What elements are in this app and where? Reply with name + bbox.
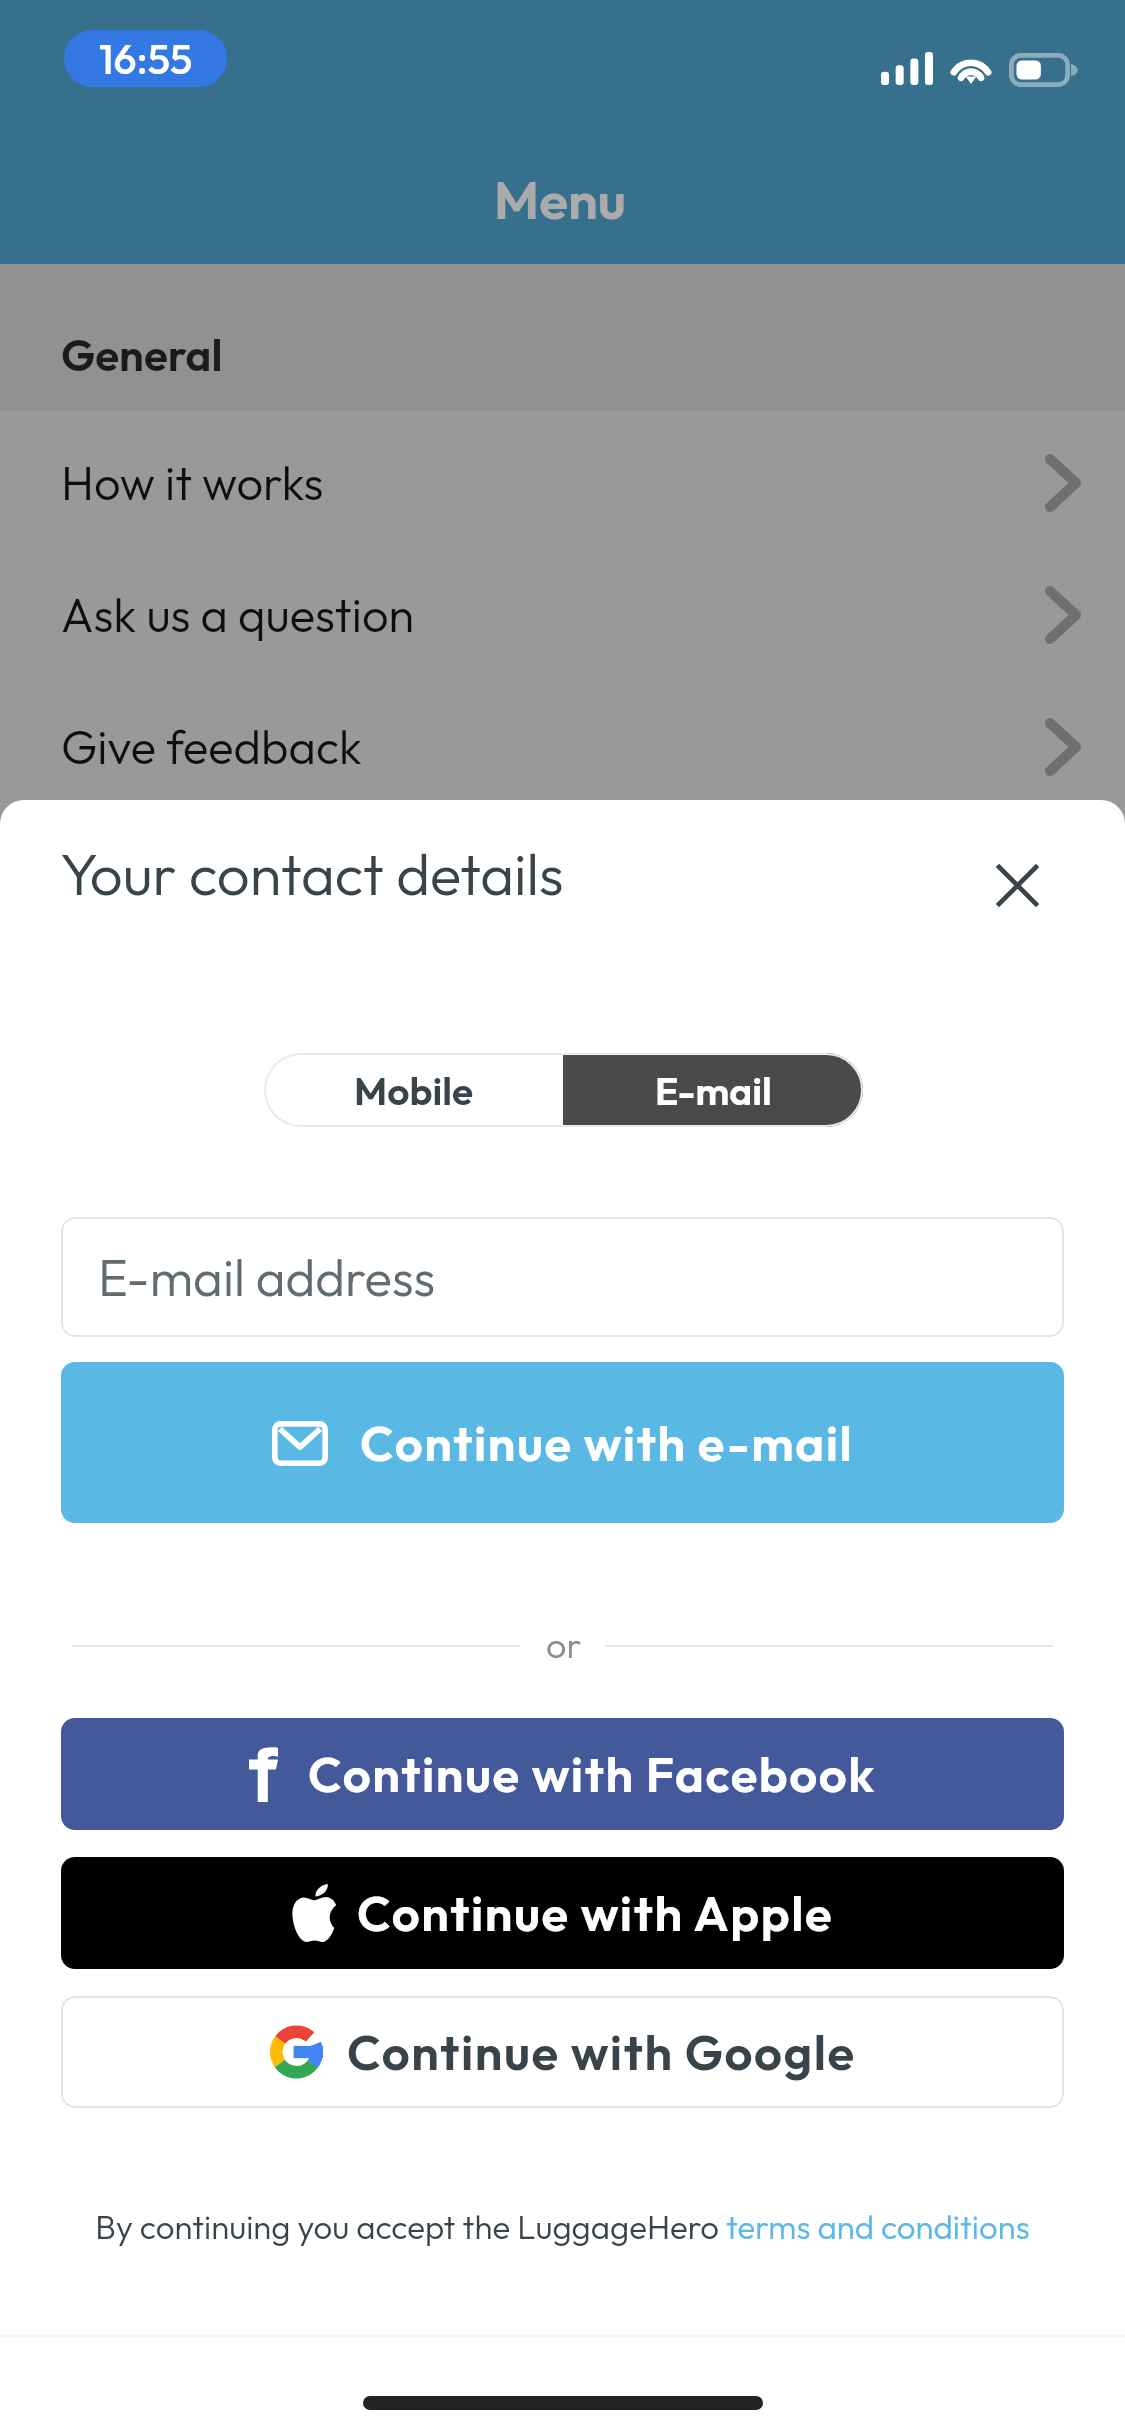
staticText: How it works xyxy=(61,453,324,512)
staticText: 16:55 xyxy=(99,33,193,85)
button[interactable]: Close xyxy=(985,853,1049,917)
staticText: Menu xyxy=(494,166,626,233)
staticText: Continue with Google xyxy=(347,2021,856,2083)
staticText: By continuing you accept the LuggageHero… xyxy=(0,2206,1125,2248)
button[interactable]: Continue with Google xyxy=(61,1996,1064,2108)
staticText: Continue with e-mail xyxy=(360,1412,854,1474)
button[interactable]: Give feedback xyxy=(0,681,1125,812)
button[interactable]: E-mail xyxy=(563,1053,863,1127)
staticText: Ask us a question xyxy=(61,585,415,644)
button[interactable]: Ask us a question xyxy=(0,549,1125,680)
button[interactable]: Continue with Facebook xyxy=(61,1718,1064,1830)
staticText: Mobile xyxy=(354,1066,474,1115)
button[interactable]: How it works xyxy=(0,417,1125,548)
staticText: General xyxy=(61,327,223,382)
staticText: E-mail address xyxy=(98,1245,436,1309)
staticText: Your contact details xyxy=(60,837,564,910)
button[interactable]: E-mail address xyxy=(61,1217,1064,1337)
staticText: or xyxy=(546,1622,582,1667)
staticText: Give feedback xyxy=(61,717,362,776)
button[interactable]: Continue with Apple xyxy=(61,1857,1064,1969)
staticText: Continue with Apple xyxy=(357,1882,834,1944)
button[interactable]: Continue with e-mail xyxy=(61,1362,1064,1523)
button[interactable]: Mobile xyxy=(264,1053,563,1127)
staticText: E-mail xyxy=(655,1066,772,1115)
staticText: Continue with Facebook xyxy=(308,1743,876,1805)
